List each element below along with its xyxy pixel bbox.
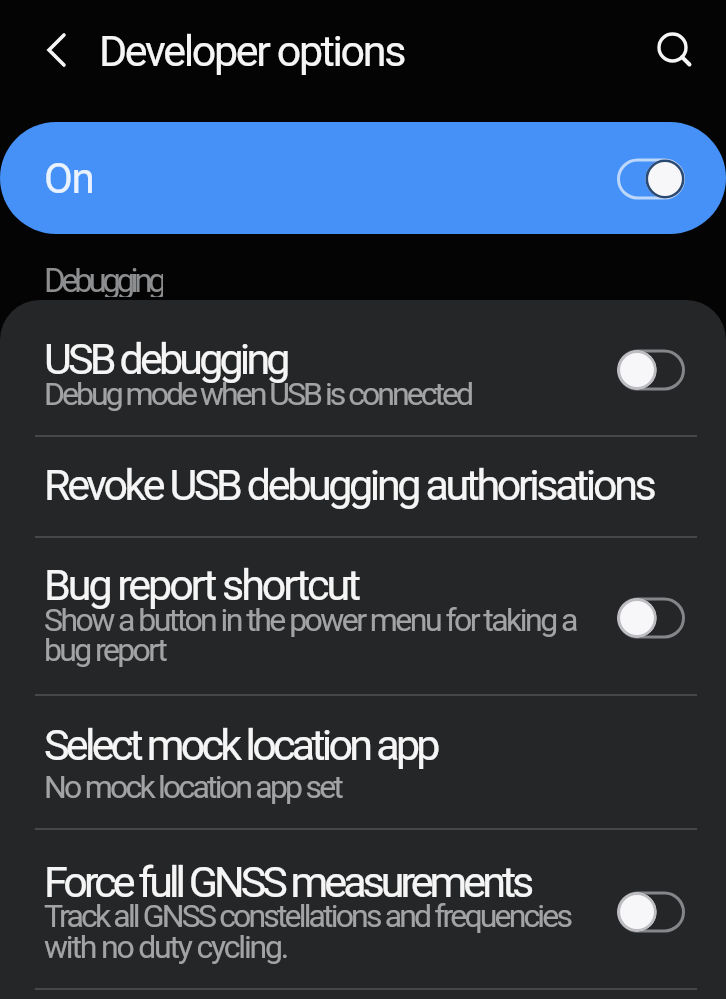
button[interactable] bbox=[0, 829, 726, 989]
staticText: Bug report shortcut bbox=[44, 560, 359, 610]
staticText: Track all GNSS constellations and freque… bbox=[44, 897, 571, 935]
staticText: Revoke USB debugging authorisations bbox=[44, 460, 654, 510]
button[interactable]: On bbox=[0, 122, 726, 234]
staticText: Debug mode when USB is connected bbox=[44, 375, 472, 413]
button[interactable] bbox=[0, 537, 726, 695]
staticText: Show a button in the power menu for taki… bbox=[44, 601, 576, 639]
button[interactable] bbox=[0, 300, 726, 435]
staticText: with no duty cycling. bbox=[44, 928, 288, 966]
staticText: On bbox=[44, 154, 94, 203]
button[interactable] bbox=[643, 18, 705, 80]
button[interactable] bbox=[0, 436, 726, 536]
staticText: No mock location app set bbox=[44, 768, 342, 806]
staticText: USB debugging bbox=[44, 334, 287, 384]
button[interactable] bbox=[26, 19, 88, 81]
staticText: Debugging bbox=[44, 268, 163, 297]
staticText: Select mock location app bbox=[44, 720, 437, 770]
staticText: bug report bbox=[44, 631, 166, 669]
staticText: Force full GNSS measurements bbox=[44, 857, 531, 907]
button[interactable] bbox=[0, 695, 726, 829]
staticText: Developer options bbox=[99, 26, 404, 76]
